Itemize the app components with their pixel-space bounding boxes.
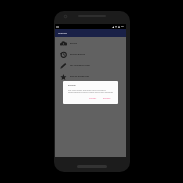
button[interactable]: Restore Backup — [55, 49, 126, 60]
button[interactable]: Set Attendance Limit — [55, 60, 126, 71]
button[interactable]: CANCEL — [89, 97, 97, 100]
button[interactable]: BACKUP — [103, 97, 111, 100]
staticText: Rate on Google Play — [70, 75, 90, 78]
staticText: 13 — [121, 25, 124, 28]
staticText: Settings — [58, 31, 68, 34]
staticText: Backup — [68, 84, 76, 87]
button[interactable]: Rate on Google Play — [55, 71, 126, 82]
button[interactable]: Backup — [55, 38, 126, 49]
staticText: Do you want backup your current attendan… — [68, 88, 114, 94]
staticText: Set Attendance Limit — [70, 64, 90, 67]
staticText: Restore Backup — [70, 53, 85, 56]
staticText: Backup — [70, 42, 78, 45]
